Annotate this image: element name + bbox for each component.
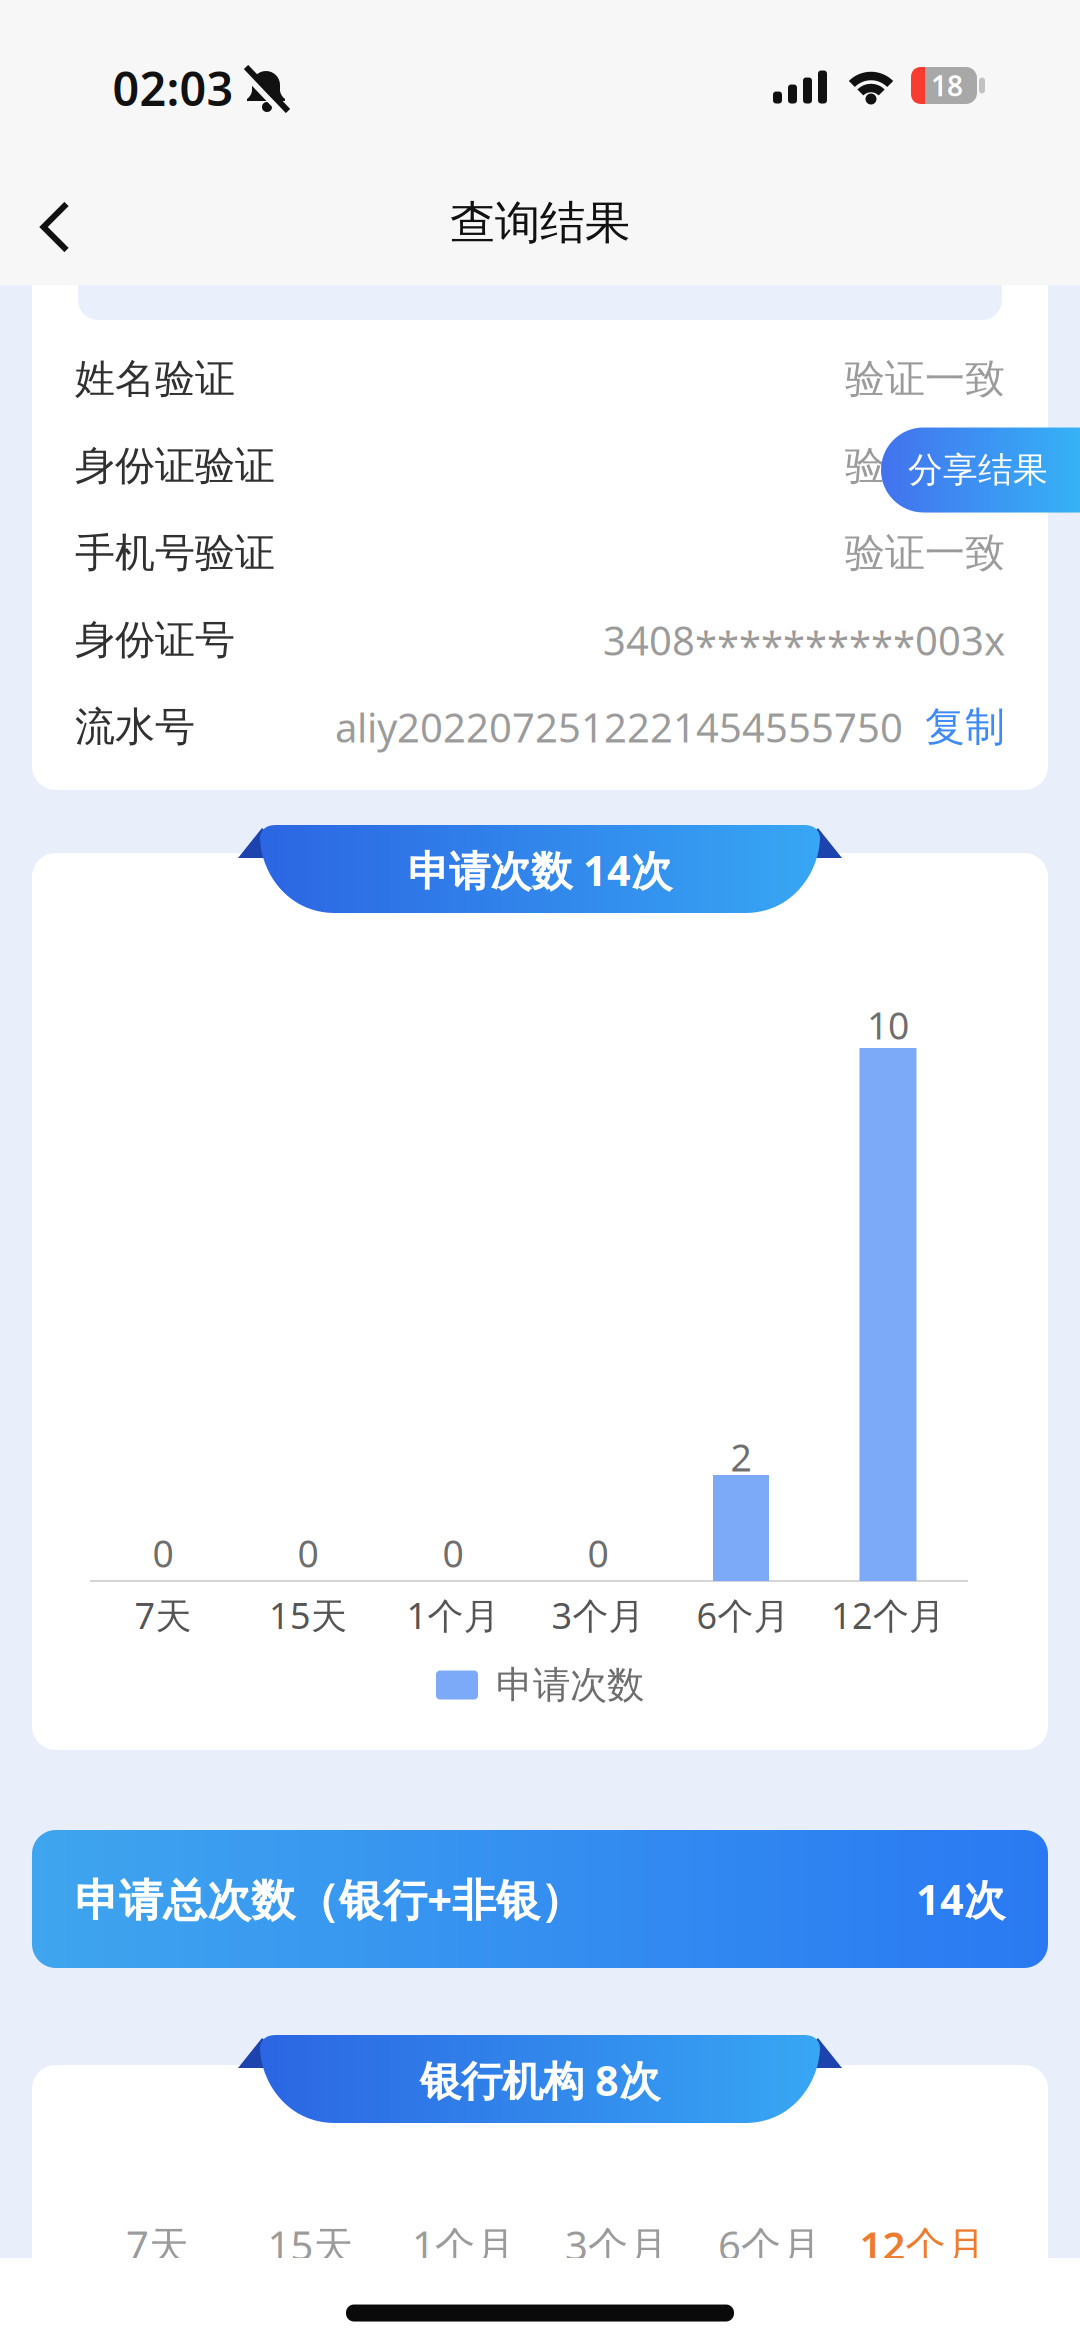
staticText: 1个月 (406, 1591, 499, 1639)
staticText: 查询结果 (450, 195, 630, 251)
staticText: 14次 (916, 1872, 1005, 1926)
button[interactable]: 3个月 (540, 2218, 693, 2271)
staticText: 15天 (267, 2218, 353, 2271)
staticText: 验证一致 (845, 441, 1005, 490)
button[interactable]: Back (27, 196, 82, 258)
button[interactable]: 6个月 (693, 2218, 846, 2271)
staticText: 0 (587, 1528, 608, 1578)
staticText: 15天 (269, 1591, 347, 1639)
staticText: 12个月 (859, 2218, 985, 2271)
staticText: 6个月 (696, 1591, 789, 1639)
staticText: 10 (867, 1000, 909, 1050)
staticText: 身份证验证 (75, 441, 275, 490)
button[interactable]: 15天 (234, 2218, 387, 2271)
staticText: 申请次数 (496, 1662, 644, 1708)
staticText: 手机号验证 (75, 528, 275, 577)
staticText: 银行机构 8次 (420, 2053, 660, 2107)
staticText: 申请总次数（银行+非银） (75, 1870, 584, 1928)
staticText: aliy2022072512221454555750 (335, 700, 903, 753)
staticText: 02:03 (112, 57, 233, 119)
staticText: 验证一致 (845, 354, 1005, 403)
staticText: ********** (695, 618, 915, 671)
staticText: 分享结果 (908, 449, 1048, 491)
staticText: 7天 (134, 1591, 191, 1639)
staticText: 身份证号 (75, 615, 235, 664)
staticText: 0 (297, 1528, 318, 1578)
button[interactable]: 12个月 (846, 2218, 999, 2271)
staticText: 验证一致 (845, 528, 1005, 577)
staticText: 18 (931, 67, 963, 104)
button[interactable]: 复制 (903, 702, 1005, 751)
staticText: 3408 (603, 613, 695, 666)
staticText: 申请次数 14次 (408, 843, 672, 897)
staticText: 姓名验证 (75, 354, 235, 403)
button[interactable]: 分享结果 (881, 427, 1080, 512)
staticText: 12个月 (831, 1591, 945, 1639)
staticText: 复制 (925, 702, 1005, 751)
staticText: 2 (730, 1432, 751, 1482)
staticText: 7天 (126, 2218, 189, 2271)
staticText: 1个月 (412, 2218, 515, 2271)
staticText: 3个月 (551, 1591, 644, 1639)
staticText: 0 (442, 1528, 463, 1578)
button[interactable]: 7天 (81, 2218, 234, 2271)
staticText: 6个月 (718, 2218, 821, 2271)
staticText: 流水号 (75, 702, 195, 751)
button[interactable]: 1个月 (387, 2218, 540, 2271)
staticText: 3个月 (565, 2218, 668, 2271)
staticText: 003x (915, 613, 1005, 666)
staticText: 0 (152, 1528, 173, 1578)
